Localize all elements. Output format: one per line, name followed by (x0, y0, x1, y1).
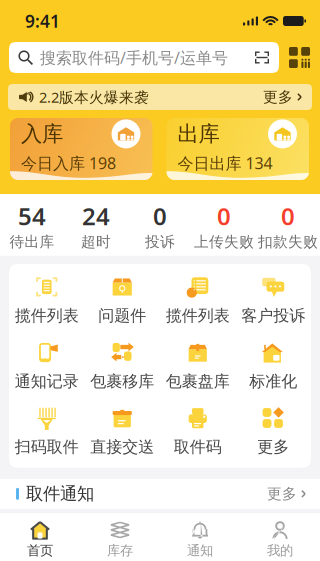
staticText: 客户投诉 (241, 306, 305, 326)
staticText: 扣款失败 (258, 233, 318, 251)
button[interactable]: 54 (0, 200, 64, 251)
staticText: 取件通知 (26, 483, 94, 504)
staticText: 54 (18, 200, 46, 232)
staticText: 库存 (107, 542, 133, 559)
staticText: 入库 (21, 121, 63, 147)
button[interactable]: 入库 (10, 118, 152, 180)
staticText: 9:41 (25, 9, 60, 32)
button[interactable]: 揽件列表 (9, 275, 84, 326)
button[interactable]: 库存 (80, 521, 160, 559)
button[interactable]: 客户投诉 (235, 275, 311, 326)
staticText: 通知记录 (15, 371, 79, 391)
button[interactable]: 问题件 (84, 275, 160, 326)
staticText: 直接交送 (90, 437, 154, 457)
staticText: 我的 (267, 542, 293, 559)
staticText: 包裹盘库 (166, 371, 230, 391)
button[interactable]: 标准化 (235, 340, 311, 391)
staticText: 更多 (267, 485, 297, 503)
button[interactable]: 24 (64, 200, 128, 251)
button[interactable]: 通知 (160, 521, 240, 559)
staticText: 揽件列表 (15, 306, 79, 326)
staticText: 出库 (177, 121, 219, 147)
staticText: 0 (281, 200, 295, 232)
staticText: 0 (153, 200, 167, 232)
staticText: 0 (217, 200, 231, 232)
staticText: 揽件列表 (166, 306, 230, 326)
staticText: 上传失败 (194, 233, 254, 251)
button[interactable]: 更多 (235, 406, 311, 457)
button[interactable]: 扫一扫 (279, 47, 320, 68)
staticText: 2.2版本火爆来袭 (39, 87, 149, 107)
button[interactable]: 扫码取件 (9, 406, 84, 457)
staticText: 待出库 (9, 233, 54, 251)
button[interactable]: 直接交送 (84, 406, 160, 457)
staticText: 扫码取件 (15, 437, 79, 457)
staticText: 投诉 (145, 233, 175, 251)
staticText: 首页 (27, 542, 53, 559)
staticText: 超时 (81, 233, 111, 251)
button[interactable]: 通知记录 (9, 340, 84, 391)
button[interactable]: 揽件列表 (160, 275, 235, 326)
staticText: 更多 (257, 437, 289, 457)
button[interactable]: 0 (128, 200, 192, 251)
staticText: 24 (82, 200, 110, 232)
staticText: 取件码 (174, 437, 222, 457)
staticText: 通知 (187, 542, 213, 559)
staticText: 问题件 (98, 306, 146, 326)
staticText: 更多 (263, 88, 293, 106)
staticText: 今日出库 134 (177, 152, 272, 174)
button[interactable]: 0 (192, 200, 256, 251)
staticText: 搜索取件码/手机号/运单号 (40, 47, 228, 68)
button[interactable]: 首页 (0, 521, 80, 559)
button[interactable]: 2.2版本火爆来袭 (8, 84, 312, 110)
staticText: 今日入库 198 (21, 152, 116, 174)
button[interactable]: 包裹盘库 (160, 340, 235, 391)
button[interactable]: 0 (256, 200, 320, 251)
button[interactable]: 包裹移库 (84, 340, 160, 391)
button[interactable]: 取件码 (160, 406, 235, 457)
staticText: 包裹移库 (90, 371, 154, 391)
staticText: 标准化 (249, 371, 297, 391)
button[interactable]: 取件通知 (0, 479, 320, 509)
button[interactable]: 出库 (166, 118, 309, 180)
button[interactable]: 我的 (240, 521, 320, 559)
button[interactable]: 搜索取件码/手机号/运单号 (9, 42, 279, 73)
